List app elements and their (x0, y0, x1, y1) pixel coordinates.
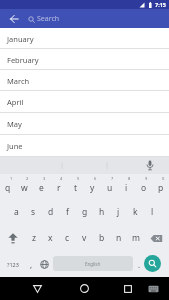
staticText: e (39, 182, 44, 194)
staticText: , (30, 259, 33, 270)
staticText: March (7, 76, 30, 86)
button[interactable]: English (53, 256, 133, 271)
button[interactable]: a (8, 199, 25, 225)
button[interactable]: ?123 (0, 251, 25, 277)
staticText: Search (37, 14, 60, 24)
staticText: 1 (10, 176, 13, 181)
staticText: x (48, 232, 53, 244)
staticText: u (107, 182, 113, 194)
button[interactable]: . (132, 251, 146, 277)
button[interactable]: z (25, 225, 42, 251)
button[interactable]: f (59, 199, 76, 225)
staticText: . (138, 259, 141, 270)
staticText: 8 (128, 176, 131, 181)
button[interactable]: l (144, 199, 161, 225)
staticText: r (57, 182, 61, 194)
button[interactable]: v (76, 225, 93, 251)
staticText: h (99, 206, 105, 218)
staticText: 5 (77, 176, 80, 181)
button[interactable] (144, 255, 161, 272)
button[interactable]: c (59, 225, 76, 251)
staticText: m (132, 232, 140, 244)
staticText: k (133, 206, 138, 218)
staticText: June (7, 141, 23, 151)
staticText: English (85, 261, 101, 267)
button[interactable] (7, 12, 20, 25)
button[interactable] (29, 277, 46, 300)
staticText: j (117, 206, 120, 218)
button[interactable]: m (127, 225, 144, 251)
button[interactable]: , (25, 251, 37, 277)
button[interactable] (0, 225, 25, 251)
button[interactable] (144, 225, 169, 251)
button[interactable]: x (42, 225, 59, 251)
button[interactable]: j (110, 199, 127, 225)
staticText: 0 (162, 176, 165, 181)
staticText: 6 (94, 176, 97, 181)
button[interactable]: 9 (135, 174, 152, 199)
button[interactable] (38, 251, 51, 277)
button[interactable]: February (0, 49, 169, 70)
staticText: z (32, 232, 36, 244)
button[interactable]: 8 (118, 174, 135, 199)
button[interactable]: June (0, 135, 169, 157)
button[interactable]: Search (28, 14, 60, 24)
button[interactable]: d (42, 199, 59, 225)
staticText: May (7, 119, 22, 129)
staticText: f (66, 206, 69, 218)
staticText: 2 (26, 176, 29, 181)
staticText: y (90, 182, 95, 194)
button[interactable]: b (93, 225, 110, 251)
staticText: 9 (145, 176, 148, 181)
button[interactable]: 1 (0, 174, 16, 199)
staticText: w (21, 182, 28, 194)
button[interactable] (146, 277, 161, 300)
button[interactable]: 2 (16, 174, 33, 199)
button[interactable]: May (0, 113, 169, 135)
staticText: n (116, 232, 122, 244)
staticText: i (125, 182, 128, 194)
button[interactable]: s (25, 199, 42, 225)
staticText: q (5, 182, 11, 194)
button[interactable]: 0 (152, 174, 169, 199)
button[interactable]: 3 (33, 174, 50, 199)
staticText: 7:15 (155, 1, 166, 8)
button[interactable]: April (0, 91, 169, 113)
staticText: 4 (60, 176, 63, 181)
button[interactable]: n (110, 225, 127, 251)
button[interactable]: March (0, 70, 169, 91)
staticText: 3 (43, 176, 46, 181)
button[interactable]: 7 (101, 174, 118, 199)
button[interactable]: 6 (84, 174, 101, 199)
staticText: c (65, 232, 70, 244)
button[interactable]: h (93, 199, 110, 225)
staticText: b (99, 232, 105, 244)
staticText: o (141, 182, 147, 194)
button[interactable] (76, 277, 93, 300)
staticText: April (7, 97, 24, 107)
staticText: s (31, 206, 36, 218)
staticText: ?123 (7, 261, 19, 268)
staticText: g (82, 206, 88, 218)
staticText: February (7, 55, 39, 65)
button[interactable]: 4 (50, 174, 67, 199)
staticText: 7 (111, 176, 114, 181)
button[interactable]: g (76, 199, 93, 225)
staticText: t (74, 182, 78, 194)
button[interactable]: k (127, 199, 144, 225)
staticText: l (151, 206, 154, 218)
staticText: p (158, 182, 164, 194)
staticText: January (7, 34, 34, 44)
button[interactable] (119, 277, 136, 300)
button[interactable]: 5 (67, 174, 84, 199)
staticText: a (14, 206, 19, 218)
staticText: d (48, 206, 54, 218)
button[interactable]: January (0, 28, 169, 49)
staticText: v (82, 232, 87, 244)
